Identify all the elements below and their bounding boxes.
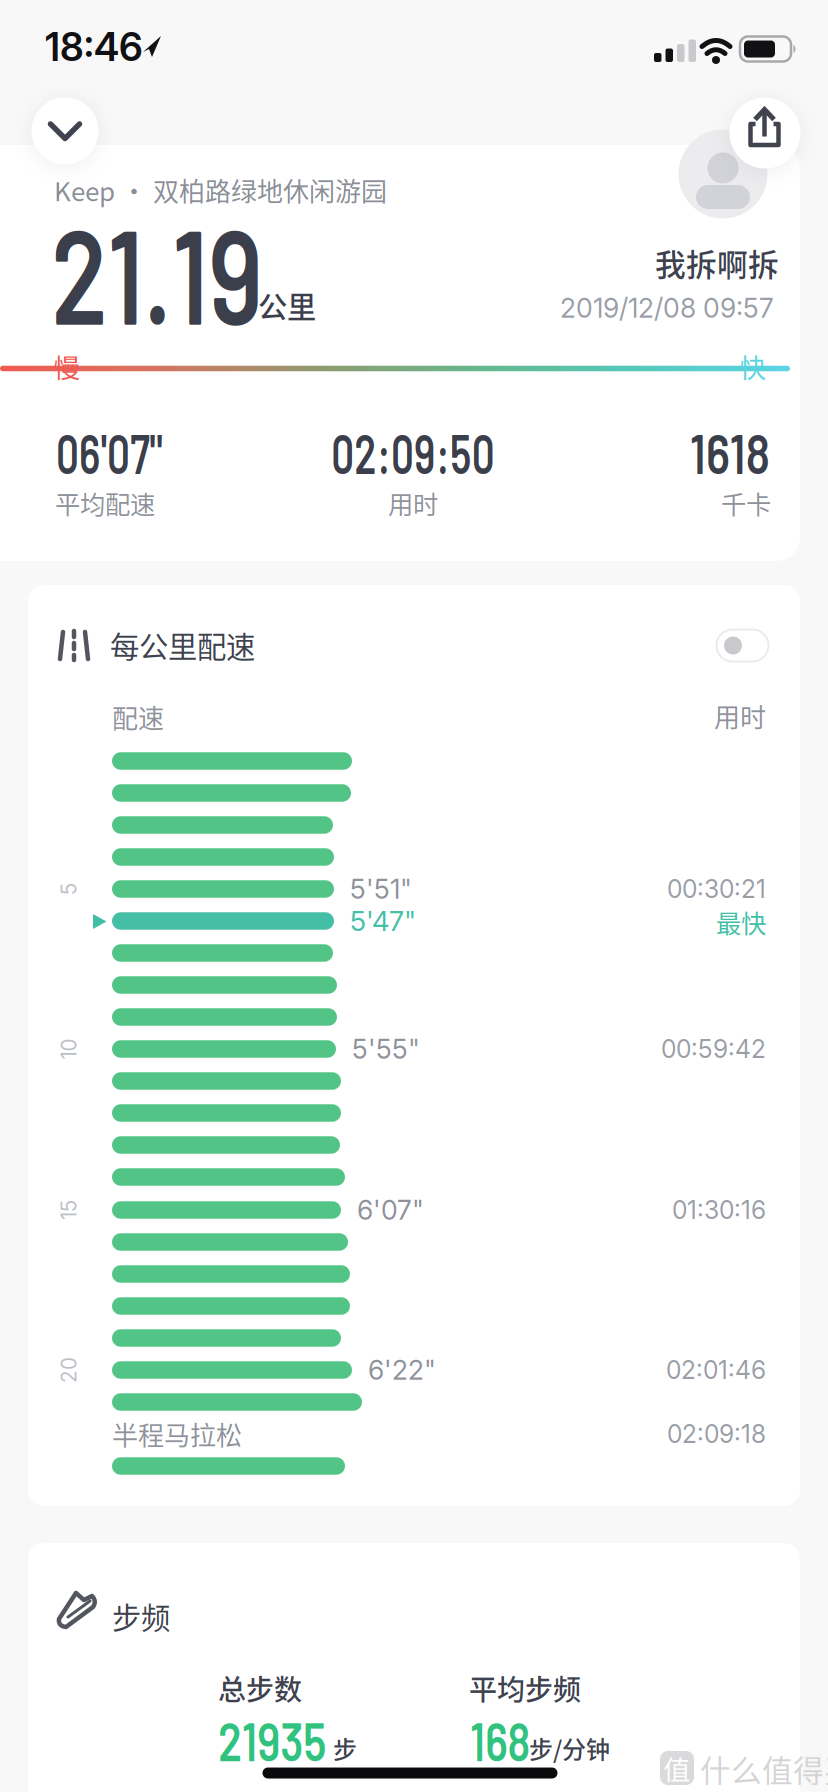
staticText: 每公里配速 [110, 624, 255, 666]
button[interactable]: 每公里配速开关 [716, 629, 768, 661]
staticText: 步 [333, 1731, 357, 1765]
staticText: 5'55" [352, 1033, 420, 1065]
staticText: 我拆啊拆 [655, 241, 779, 285]
staticText: 5 [63, 876, 75, 901]
staticText: 平均配速 [55, 485, 155, 521]
button[interactable]: Close [31, 97, 98, 164]
staticText: Keep · 双柏路绿地休闲游园 [54, 171, 387, 209]
staticText: 21935 [218, 1708, 350, 1772]
staticText: 用时 [714, 697, 766, 735]
staticText: 1618 [671, 418, 770, 485]
staticText: 千卡 [721, 485, 771, 521]
staticText: 5'47" [350, 904, 416, 938]
staticText: 慢 [53, 347, 80, 385]
staticText: 半程马拉松 [112, 1415, 242, 1453]
staticText: 00:30:21 [667, 874, 766, 904]
staticText: 公里 [258, 284, 316, 326]
staticText: 02:09:18 [667, 1419, 766, 1449]
staticText: 5'51" [350, 873, 412, 905]
staticText: 02:09:50 [299, 418, 526, 485]
staticText: 6'22" [368, 1354, 436, 1386]
staticText: 00:59:42 [661, 1034, 766, 1064]
staticText: 最快 [716, 904, 766, 940]
staticText: 02:01:46 [666, 1355, 766, 1385]
staticText: 10 [58, 1036, 79, 1061]
staticText: 配速 [112, 698, 164, 736]
staticText: 平均步频 [469, 1668, 581, 1708]
staticText: 20 [56, 1357, 82, 1382]
staticText: 21.19 [51, 193, 323, 351]
staticText: 6'07" [357, 1194, 424, 1226]
staticText: 15 [59, 1197, 79, 1222]
staticText: 用时 [388, 485, 438, 521]
staticText: 18:46 [45, 24, 143, 70]
staticText: 总步数 [218, 1668, 302, 1708]
staticText: 01:30:16 [672, 1195, 766, 1225]
staticText: 值 [663, 1749, 690, 1787]
staticText: 06'07" [56, 418, 204, 485]
staticText: 快 [739, 347, 766, 385]
staticText: 步频 [112, 1595, 170, 1637]
staticText: 168 [470, 1708, 545, 1772]
staticText: 步/分钟 [529, 1731, 610, 1765]
staticText: 什么值得买 [700, 1747, 828, 1791]
button[interactable]: Share [729, 97, 800, 168]
staticText: 2019/12/08 09:57 [560, 292, 774, 324]
